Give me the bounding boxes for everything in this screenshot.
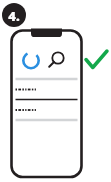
button[interactable]: Step 4 (2, 3, 26, 27)
staticText: 4. (2, 7, 26, 25)
